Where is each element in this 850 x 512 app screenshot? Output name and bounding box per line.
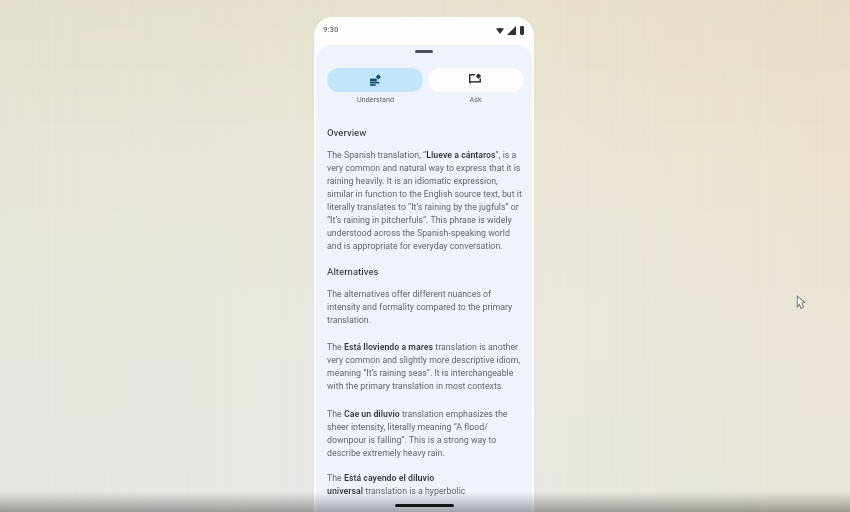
staticText: Understand xyxy=(357,95,394,103)
other: Wi-Fi xyxy=(496,28,504,34)
button[interactable]: Understand xyxy=(327,68,423,103)
other: Ask xyxy=(469,74,481,85)
staticText: The Cae un diluvio translation emphasize… xyxy=(327,409,522,458)
staticText: The Spanish translation, “Llueve a cánta… xyxy=(327,150,522,251)
staticText: Overview xyxy=(327,127,367,138)
button[interactable]: Ask xyxy=(428,68,523,103)
staticText: The Está cayendo el diluvio universal tr… xyxy=(327,473,466,496)
staticText: Ask xyxy=(469,95,482,103)
staticText: 9:30 xyxy=(323,25,339,34)
staticText: The alternatives offer different nuances… xyxy=(327,289,522,325)
other: Understand xyxy=(370,75,381,86)
staticText: The Está lloviendo a mares translation i… xyxy=(327,342,522,391)
other: Mobile signal xyxy=(507,26,516,35)
other: Battery xyxy=(520,26,524,35)
staticText: Alternatives xyxy=(327,266,379,277)
